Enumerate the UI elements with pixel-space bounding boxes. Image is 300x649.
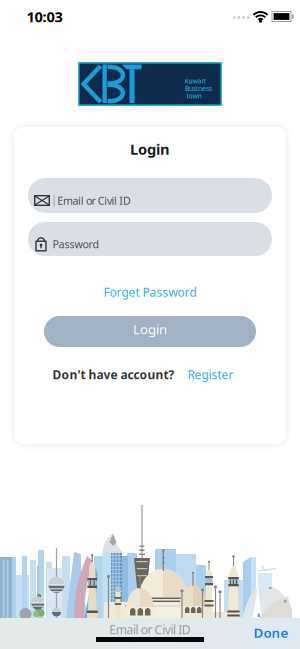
button[interactable]: Login bbox=[44, 316, 256, 347]
staticText: Password bbox=[52, 237, 99, 251]
button[interactable]: Register bbox=[187, 366, 233, 382]
staticText: Login bbox=[130, 139, 170, 159]
staticText: Email or Civil ID bbox=[109, 621, 191, 637]
button[interactable]: Done bbox=[253, 624, 288, 641]
button[interactable]: Password bbox=[28, 222, 272, 256]
button[interactable]: Forget Password bbox=[103, 284, 196, 300]
staticText: Forget Password bbox=[103, 284, 196, 300]
staticText: Done bbox=[253, 624, 288, 641]
staticText: 10:03 bbox=[26, 7, 62, 26]
staticText: Login bbox=[133, 320, 167, 338]
staticText: Email or Civil ID bbox=[57, 193, 131, 208]
staticText: Don't have account? bbox=[52, 366, 174, 382]
button[interactable]: Email or Civil ID bbox=[28, 178, 272, 213]
staticText: Register bbox=[187, 366, 233, 382]
staticText: Business bbox=[185, 84, 212, 93]
staticText: Town bbox=[185, 92, 201, 100]
staticText: Kuwait bbox=[184, 77, 206, 85]
